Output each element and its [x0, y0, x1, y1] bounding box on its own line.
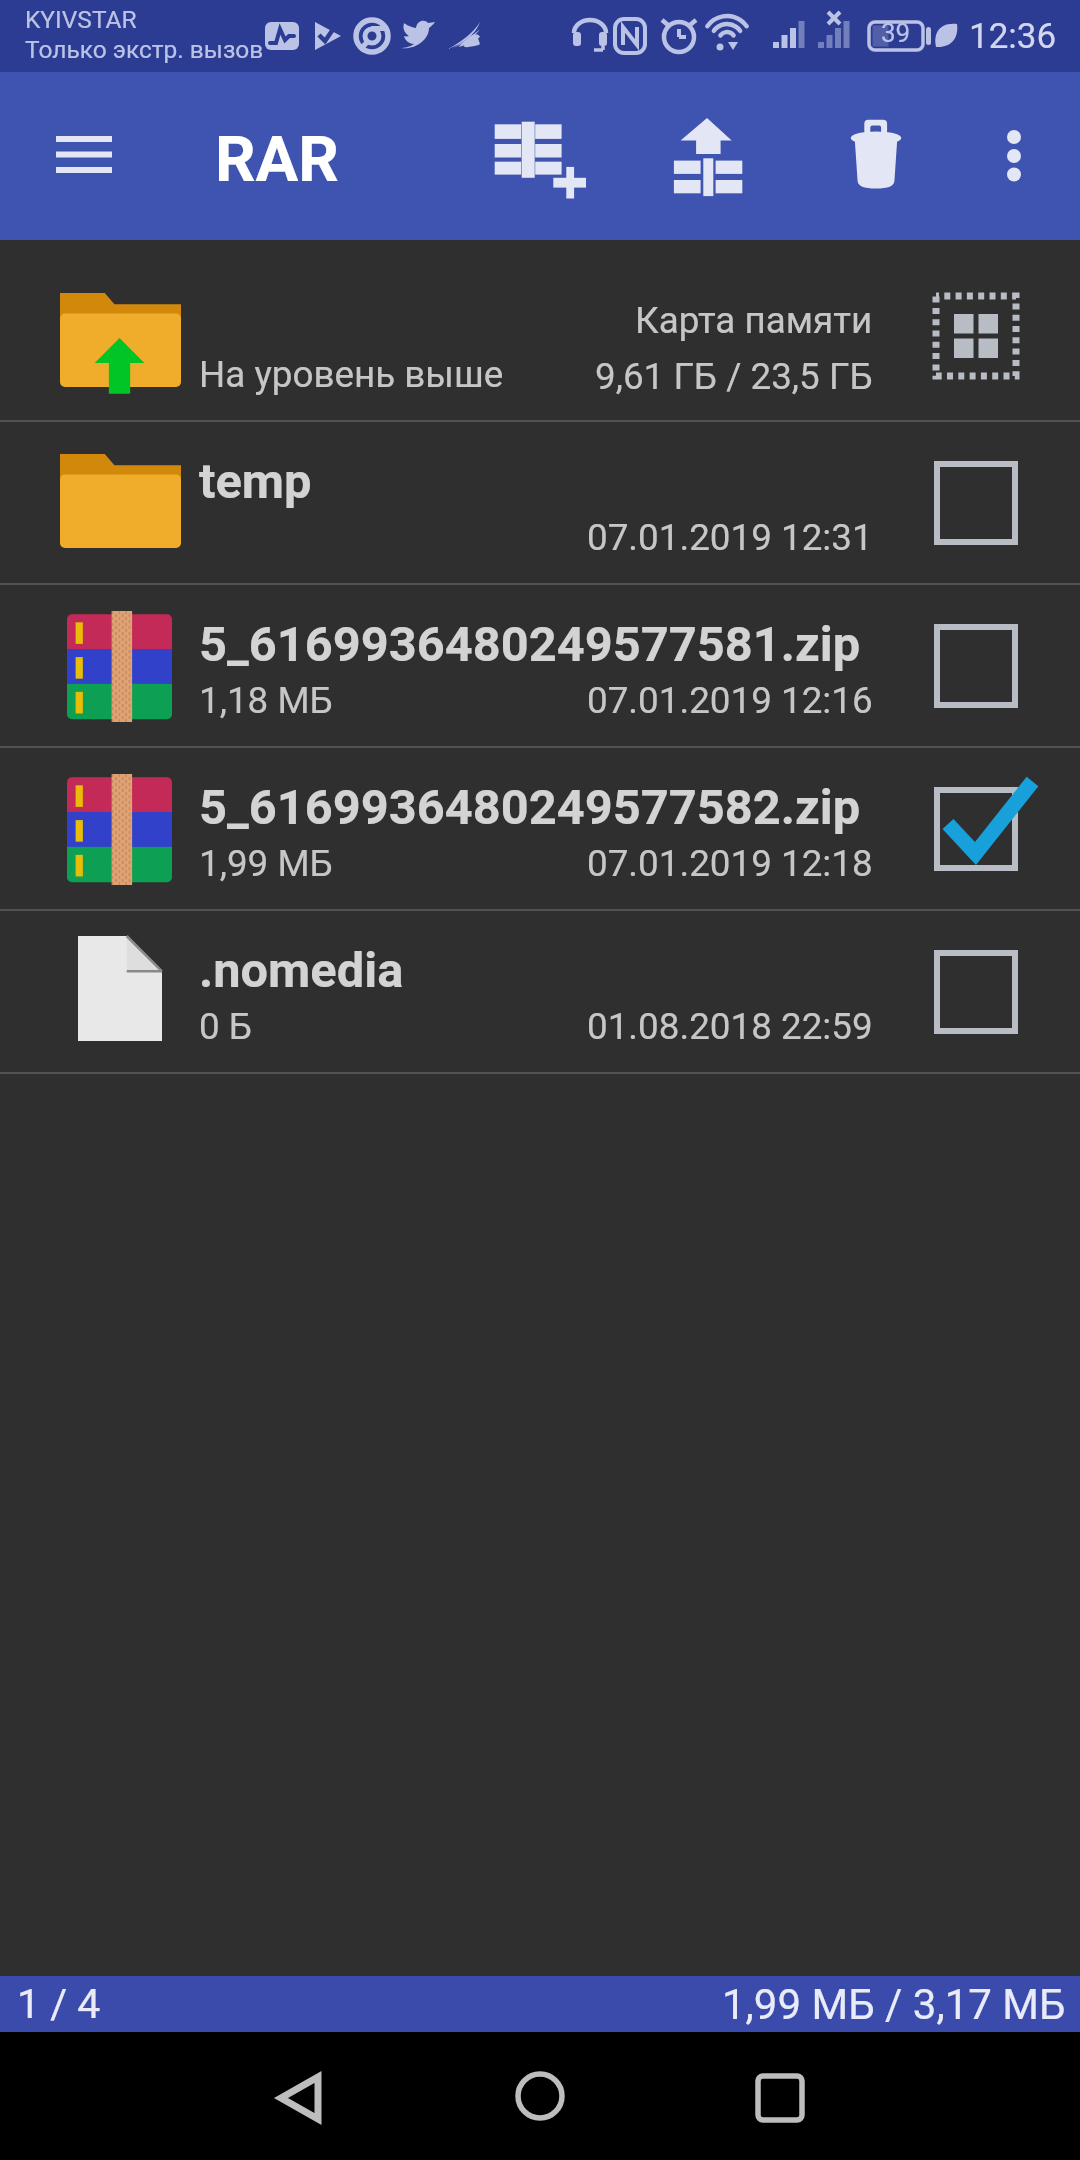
button[interactable]: Extract — [665, 108, 755, 208]
button[interactable]: 5_6169936480249577582.zip — [0, 748, 1080, 909]
button[interactable]: 5_6169936480249577581.zip — [0, 585, 1080, 746]
button[interactable]: .nomedia — [0, 911, 1080, 1072]
button[interactable]: Back — [240, 2038, 360, 2158]
staticText: RAR — [215, 122, 339, 196]
button[interactable]: Recent apps — [720, 2038, 840, 2158]
button[interactable]: Select — [926, 616, 1026, 716]
staticText: Карта памяти — [635, 299, 873, 342]
staticText: Только экстр. вызов — [25, 35, 264, 64]
staticText: 5_6169936480249577582.zip — [199, 779, 861, 836]
staticText: 07.01.2019 12:16 — [587, 679, 873, 722]
button[interactable]: Select — [926, 942, 1026, 1042]
button[interactable]: More options — [980, 108, 1048, 208]
button[interactable]: Select — [926, 779, 1026, 879]
button[interactable]: На уровень выше — [0, 240, 1080, 420]
staticText: KYIVSTAR — [25, 5, 137, 34]
staticText: 07.01.2019 12:18 — [587, 842, 873, 885]
staticText: 1,99 МБ — [199, 842, 333, 885]
button[interactable]: Select — [926, 453, 1026, 553]
staticText: На уровень выше — [199, 353, 504, 396]
button[interactable]: temp — [0, 422, 1080, 583]
button[interactable]: Menu — [34, 124, 134, 184]
staticText: 0 Б — [199, 1005, 253, 1048]
staticText: 5_6169936480249577581.zip — [199, 616, 861, 673]
staticText: temp — [199, 453, 312, 510]
staticText: 1,99 МБ / 3,17 МБ — [722, 1980, 1066, 2029]
staticText: .nomedia — [199, 942, 404, 999]
staticText: 07.01.2019 12:31 — [587, 516, 873, 559]
button[interactable]: Home — [480, 2036, 600, 2156]
staticText: 9,61 ГБ / 23,5 ГБ — [595, 355, 873, 398]
button[interactable]: Select all — [926, 288, 1026, 384]
staticText: 01.08.2018 22:59 — [587, 1005, 873, 1048]
staticText: 1 / 4 — [17, 1980, 101, 2028]
staticText: 39 — [881, 18, 911, 48]
button[interactable]: Delete — [845, 108, 913, 208]
staticText: 1,18 МБ — [199, 679, 333, 722]
staticText: 12:36 — [969, 16, 1057, 57]
button[interactable]: Add to archive — [484, 110, 594, 210]
